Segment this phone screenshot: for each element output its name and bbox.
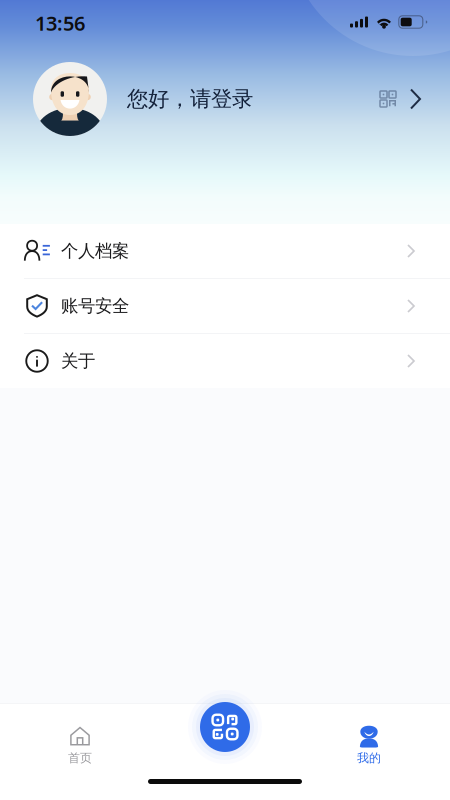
button[interactable]: 扫一扫 bbox=[187, 689, 263, 765]
staticText: 关于 bbox=[61, 350, 95, 372]
button[interactable]: 个人档案 bbox=[0, 224, 450, 279]
staticText: 个人档案 bbox=[61, 240, 129, 262]
staticText: 首页 bbox=[68, 751, 92, 765]
button[interactable]: 扫码登录 bbox=[380, 78, 421, 119]
button[interactable]: 关于 bbox=[0, 334, 450, 388]
staticText: 您好，请登录 bbox=[127, 86, 253, 112]
button[interactable]: 账号安全 bbox=[0, 279, 450, 334]
button[interactable]: 首页 bbox=[20, 720, 140, 772]
button[interactable]: 我的 bbox=[309, 720, 429, 772]
staticText: 我的 bbox=[357, 751, 381, 765]
staticText: 13:56 bbox=[35, 10, 85, 36]
staticText: 账号安全 bbox=[61, 295, 129, 317]
